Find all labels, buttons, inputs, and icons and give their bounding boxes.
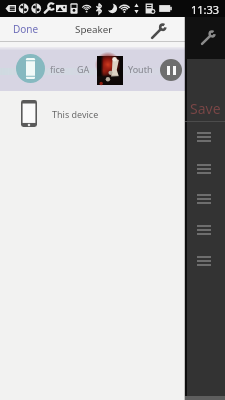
button[interactable] — [197, 256, 211, 266]
staticText: Save — [190, 99, 221, 118]
button[interactable] — [197, 194, 211, 204]
staticText: fice — [50, 63, 65, 75]
staticText: Done — [13, 22, 39, 36]
button[interactable] — [197, 132, 211, 142]
staticText: This device — [52, 108, 99, 120]
button[interactable]: Settings — [200, 29, 217, 46]
button[interactable] — [0, 47, 225, 91]
button[interactable]: Settings — [150, 22, 168, 40]
button[interactable]: Connected device — [16, 54, 45, 83]
staticText: GA — [77, 63, 90, 75]
button[interactable]: This device — [0, 91, 185, 136]
button[interactable] — [197, 225, 211, 235]
staticText: 11:33 — [191, 2, 220, 17]
staticText: Speaker — [75, 23, 113, 36]
button[interactable]: Done — [3, 17, 48, 41]
staticText: Youth — [128, 63, 153, 75]
button[interactable] — [197, 164, 211, 174]
button[interactable]: Pause — [160, 59, 182, 81]
